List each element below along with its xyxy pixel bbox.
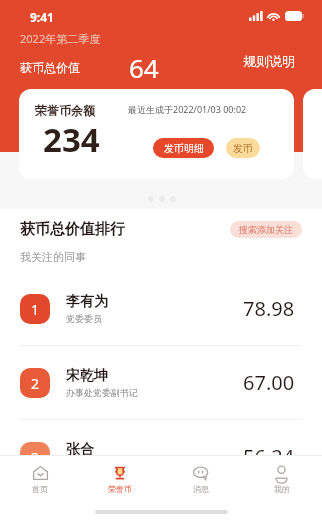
button[interactable]: Profile [241, 456, 322, 504]
button[interactable]: 2 [0, 346, 322, 420]
button[interactable]: 搜索添加关注 [230, 221, 302, 238]
staticText: 我的 [274, 484, 290, 494]
button[interactable]: 发币 [226, 138, 260, 158]
staticText: 我关注的同事 [20, 250, 86, 264]
staticText: 234 [43, 117, 100, 162]
staticText: 发币 [233, 142, 253, 155]
button[interactable]: Honor coins [80, 456, 160, 504]
staticText: 56.24 [243, 443, 295, 470]
staticText: 67.00 [243, 369, 295, 396]
staticText: 最近生成于2022/01/03 00:02 [128, 103, 247, 115]
staticText: 办事处党委副书记 [66, 387, 138, 398]
staticText: 规则说明 [243, 53, 295, 69]
button[interactable]: 规则说明 [238, 48, 300, 74]
staticText: 获币总价值排行 [20, 220, 125, 239]
staticText: 1 [31, 300, 40, 319]
button[interactable]: 荣誉币余额 [19, 89, 294, 179]
staticText: 64 [129, 50, 159, 85]
button[interactable]: 发币明细 [153, 138, 214, 158]
staticText: 宋乾坤 [66, 367, 108, 385]
staticText: 首页 [32, 484, 48, 494]
staticText: 张合 [66, 441, 94, 459]
staticText: 李有为 [66, 293, 108, 311]
staticText: 78.98 [243, 295, 295, 322]
staticText: 党委委员 [66, 313, 102, 324]
staticText: 3 [31, 448, 40, 467]
button[interactable]: Messages [160, 456, 241, 504]
button[interactable]: 1 [0, 272, 322, 346]
staticText: 获币总价值 [20, 60, 80, 75]
staticText: 荣誉币余额 [35, 103, 95, 118]
button[interactable]: 3 [0, 420, 322, 494]
staticText: 消息 [193, 484, 209, 494]
staticText: 2022年第二季度 [20, 31, 101, 46]
staticText: 2 [31, 374, 40, 393]
staticText: 荣誉币 [108, 484, 132, 494]
staticText: 9:41 [30, 9, 54, 25]
staticText: 搜索添加关注 [239, 224, 293, 235]
button[interactable]: Home [0, 456, 80, 504]
staticText: 发币明细 [164, 142, 204, 155]
